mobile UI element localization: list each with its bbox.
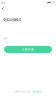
staticText: 开通即代表您已同意 (13, 90, 31, 93)
staticText: 《服务协议》 (31, 90, 43, 93)
staticText: 立即开通 (22, 48, 34, 51)
staticText: 更多出借模式 (3, 18, 21, 22)
button[interactable]: Back (0, 5, 6, 12)
button[interactable]: 开通即代表您已同意 (13, 90, 43, 93)
staticText: 9:41 (1, 1, 5, 4)
button[interactable]: 立即开通 (0, 46, 56, 53)
staticText: 说明 (3, 37, 7, 40)
